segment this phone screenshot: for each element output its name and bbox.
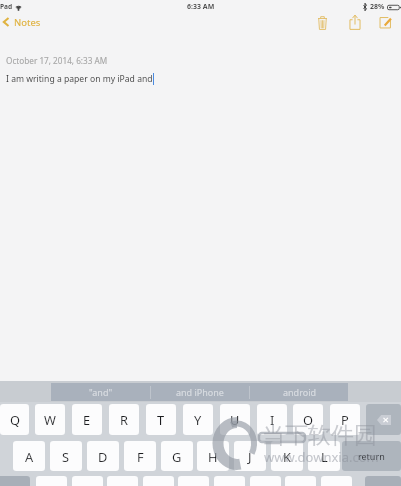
staticText: W [44,411,56,428]
staticText: and iPhone [176,386,224,398]
button[interactable]: E [72,404,102,435]
button[interactable]: F [124,441,156,471]
staticText: I am writing a paper on my iPad and [6,73,153,85]
button[interactable]: P [330,404,360,435]
button[interactable] [321,476,352,486]
staticText: D [98,448,108,465]
staticText: Pad [0,2,13,11]
button[interactable] [214,476,245,486]
button[interactable]: android [250,383,348,401]
button[interactable]: "and" [51,383,150,401]
button[interactable] [143,476,174,486]
staticText: 当下软件园 [262,421,377,450]
button[interactable]: R [109,404,139,435]
button[interactable]: Share [343,11,366,33]
button[interactable]: return [342,441,401,471]
button[interactable]: Y [183,404,213,435]
staticText: S [62,448,70,465]
button[interactable]: T [146,404,176,435]
staticText: P [341,411,349,428]
staticText: return [358,450,385,462]
staticText: www.downxia.com [264,448,379,466]
button[interactable]: J [234,441,266,471]
button[interactable]: Shift [365,476,401,486]
button[interactable] [250,476,281,486]
button[interactable]: Notes [1,12,47,32]
staticText: J [248,448,252,465]
button[interactable]: I [257,404,287,435]
button[interactable]: K [271,441,303,471]
staticText: October 17, 2014, 6:33 AM [6,55,108,66]
staticText: O [303,411,313,428]
button[interactable] [36,476,67,486]
staticText: 28% [370,2,385,12]
button[interactable]: New Note [374,11,397,33]
staticText: 6:33 AM [187,2,215,12]
button[interactable]: O [293,404,323,435]
button[interactable] [72,476,103,486]
button[interactable] [107,476,138,486]
button[interactable]: H [197,441,229,471]
button[interactable] [178,476,209,486]
button[interactable]: Q [0,404,29,435]
button[interactable]: A [13,441,45,471]
staticText: android [283,386,316,398]
staticText: I [270,411,275,428]
button[interactable]: U [220,404,250,435]
button[interactable]: Backspace [366,404,401,435]
button[interactable]: Delete [311,12,334,34]
button[interactable] [285,476,316,486]
button[interactable]: G [161,441,193,471]
staticText: L [321,448,328,465]
staticText: F [137,448,144,465]
staticText: Notes [14,16,41,29]
staticText: Y [194,411,202,428]
staticText: H [208,448,218,465]
button[interactable]: L [308,441,340,471]
staticText: Q [10,411,20,428]
staticText: U [230,411,240,428]
staticText: K [283,448,291,465]
staticText: A [25,448,34,465]
button[interactable]: S [50,441,82,471]
staticText: "and" [89,386,113,398]
button[interactable]: D [87,441,119,471]
button[interactable]: W [35,404,65,435]
staticText: T [157,411,165,428]
staticText: R [120,411,128,428]
button[interactable]: and iPhone [151,383,249,401]
staticText: E [83,411,91,428]
staticText: G [172,448,182,465]
